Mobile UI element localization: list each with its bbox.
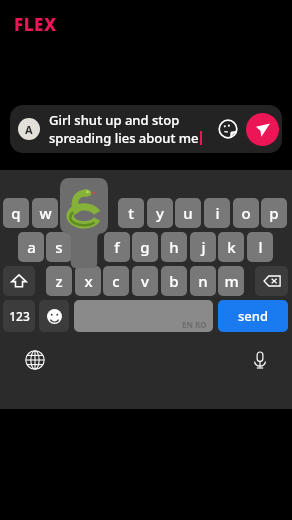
button[interactable]: g [132, 232, 158, 262]
button[interactable]: h [161, 232, 187, 262]
button[interactable]: y [147, 198, 173, 228]
button[interactable]: i [204, 198, 230, 228]
button[interactable]: q [3, 198, 29, 228]
button[interactable]: m [218, 266, 244, 296]
button[interactable]: e [60, 198, 86, 228]
button[interactable]: 123 [3, 300, 35, 332]
staticText: b [169, 271, 179, 291]
button[interactable]: Send [246, 113, 279, 146]
button[interactable]: t [118, 198, 144, 228]
staticText: z [55, 271, 63, 291]
button[interactable]: Voice input [245, 345, 275, 375]
button[interactable]: b [161, 266, 187, 296]
button[interactable]: w [32, 198, 58, 228]
button[interactable]: Girl shut up and stop [49, 111, 209, 147]
staticText: q [11, 203, 21, 223]
staticText: Girl shut up and stop [49, 111, 180, 129]
button[interactable]: x [75, 266, 101, 296]
staticText: s [55, 237, 63, 257]
button[interactable]: Space [74, 300, 213, 332]
staticText: h [169, 237, 179, 257]
staticText: A [25, 122, 33, 137]
button[interactable]: Emoji [39, 300, 69, 332]
staticText: 123 [9, 308, 30, 324]
staticText: o [241, 203, 251, 223]
staticText: u [183, 203, 193, 223]
staticText: x [84, 271, 93, 291]
staticText: t [128, 203, 134, 223]
staticText: m [224, 271, 239, 291]
staticText: l [258, 237, 263, 257]
button[interactable]: p [261, 198, 287, 228]
staticText: FLEX [14, 13, 57, 36]
staticText: a [27, 237, 36, 257]
button[interactable]: a [18, 232, 44, 262]
button[interactable]: l [247, 232, 273, 262]
staticText: EN RO [182, 319, 207, 330]
button[interactable]: Shift [3, 266, 35, 296]
staticText: w [39, 203, 52, 223]
button[interactable]: v [132, 266, 158, 296]
button[interactable]: z [46, 266, 72, 296]
button[interactable]: Backspace [255, 266, 288, 296]
staticText: j [201, 237, 206, 257]
button[interactable]: Change language [20, 345, 50, 375]
button[interactable]: o [233, 198, 259, 228]
button[interactable]: c [103, 266, 129, 296]
staticText: g [140, 237, 150, 257]
staticText: send [238, 307, 268, 325]
button[interactable]: send [218, 300, 288, 332]
button[interactable]: n [190, 266, 216, 296]
button[interactable]: Stickers [215, 116, 241, 142]
button[interactable]: j [190, 232, 216, 262]
staticText: e [69, 203, 78, 223]
staticText: n [198, 271, 208, 291]
staticText: y [156, 203, 164, 223]
button[interactable]: u [175, 198, 201, 228]
button[interactable]: s [46, 232, 72, 262]
button[interactable]: Profile [18, 118, 40, 140]
staticText: c [112, 271, 120, 291]
staticText: k [227, 237, 236, 257]
staticText: v [141, 271, 149, 291]
staticText: spreading lies about me [49, 129, 199, 147]
button[interactable]: FLEX [14, 13, 57, 36]
button[interactable]: k [218, 232, 244, 262]
staticText: p [269, 203, 279, 223]
staticText: i [215, 203, 220, 223]
button[interactable]: Snake emoji [60, 178, 108, 268]
staticText: f [114, 237, 120, 257]
button[interactable]: f [104, 232, 130, 262]
